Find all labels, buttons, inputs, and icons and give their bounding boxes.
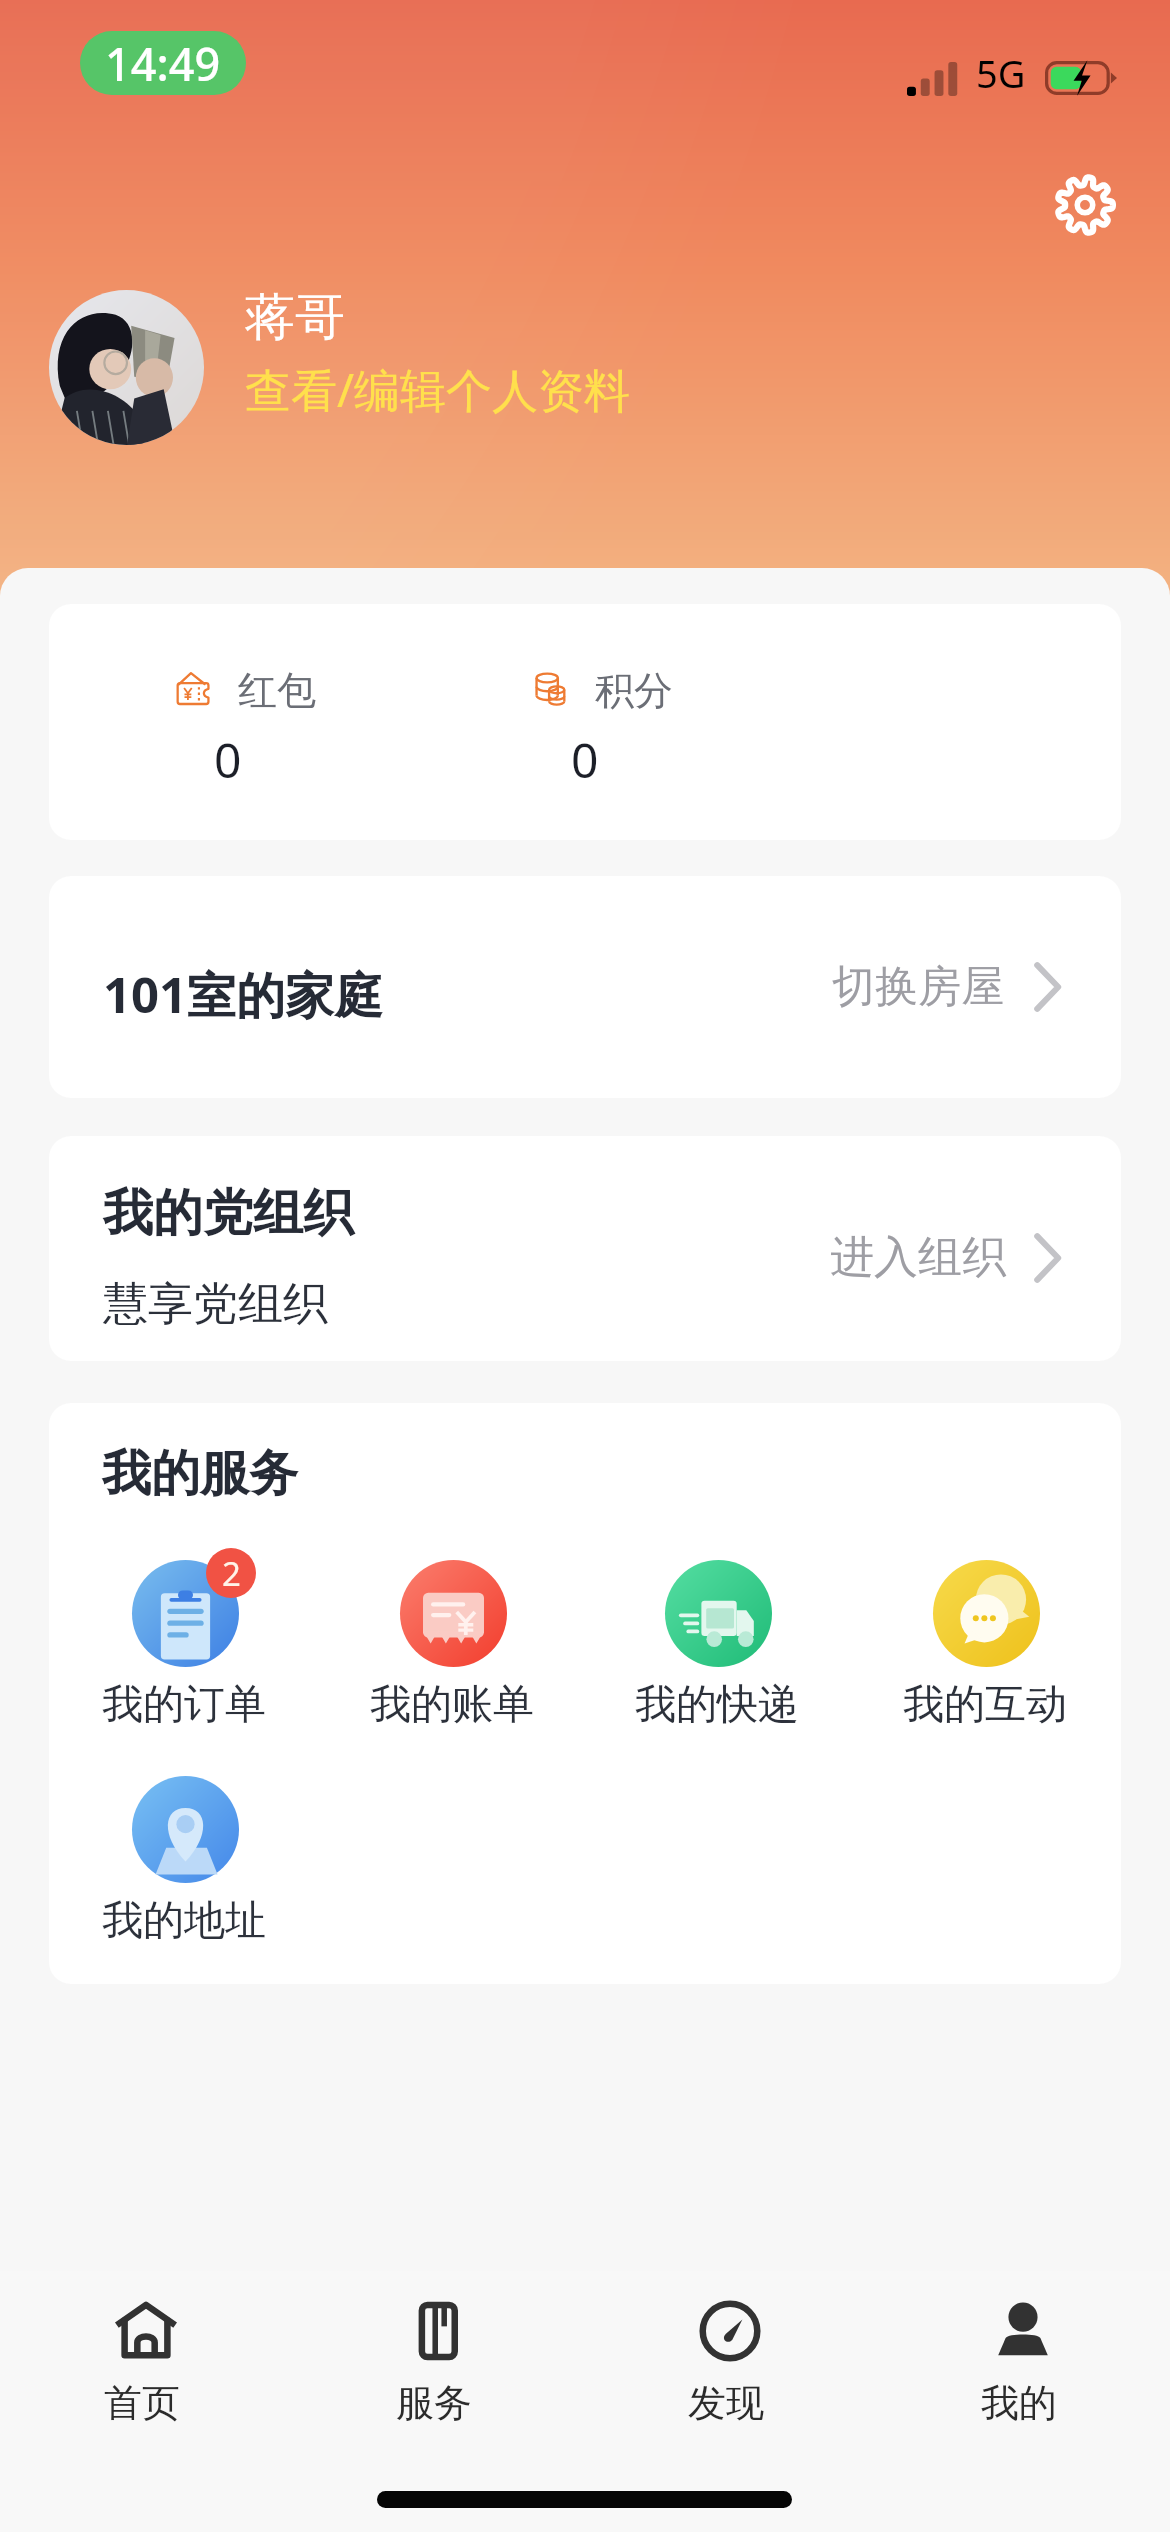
staticText: 2 <box>222 1551 241 1596</box>
staticText: 我的订单 <box>102 1679 266 1731</box>
staticText: 14:49 <box>105 33 221 94</box>
staticText: 我的地址 <box>102 1895 266 1947</box>
staticText: 101室的家庭 <box>103 961 384 1028</box>
button[interactable]: 101室的家庭 <box>49 876 1121 1098</box>
button[interactable]: 我的党组织 <box>49 1136 1121 1361</box>
button[interactable]: 积分 <box>406 604 763 840</box>
button[interactable]: 红包 <box>49 604 406 840</box>
staticText: 切换房屋 <box>832 960 1004 1014</box>
staticText: 我的账单 <box>370 1679 534 1731</box>
button[interactable]: 蒋哥 <box>49 286 590 450</box>
staticText: 慧享党组织 <box>103 1276 328 1333</box>
staticText: 我的 <box>981 2379 1057 2427</box>
staticText: 我的互动 <box>903 1679 1067 1731</box>
button[interactable]: 我的快递 <box>609 1560 829 1746</box>
staticText: 我的服务 <box>102 1443 298 1505</box>
staticText: 服务 <box>396 2379 472 2427</box>
staticText: 0 <box>214 727 242 792</box>
staticText: 首页 <box>104 2379 180 2427</box>
button[interactable]: 发现 <box>584 2271 876 2446</box>
staticText: 红包 <box>238 666 316 715</box>
staticText: 0 <box>571 727 599 792</box>
staticText: 我的快递 <box>635 1679 799 1731</box>
button[interactable]: 我的账单 <box>344 1560 564 1746</box>
button[interactable]: Settings <box>1037 157 1133 253</box>
staticText: 积分 <box>595 666 673 715</box>
staticText: 我的党组织 <box>103 1182 353 1245</box>
button[interactable]: 我的 <box>877 2271 1169 2446</box>
button[interactable]: 我的地址 <box>76 1776 296 1962</box>
button[interactable]: 2 <box>76 1560 296 1746</box>
staticText: 查看/编辑个人资料 <box>245 358 631 421</box>
staticText: 发现 <box>688 2379 764 2427</box>
staticText: 进入组织 <box>830 1230 1006 1285</box>
staticText: 蒋哥 <box>245 286 345 349</box>
button[interactable]: 服务 <box>292 2271 584 2446</box>
button[interactable]: 首页 <box>0 2271 292 2446</box>
staticText: 5G <box>976 47 1026 99</box>
button[interactable]: 我的互动 <box>877 1560 1097 1746</box>
